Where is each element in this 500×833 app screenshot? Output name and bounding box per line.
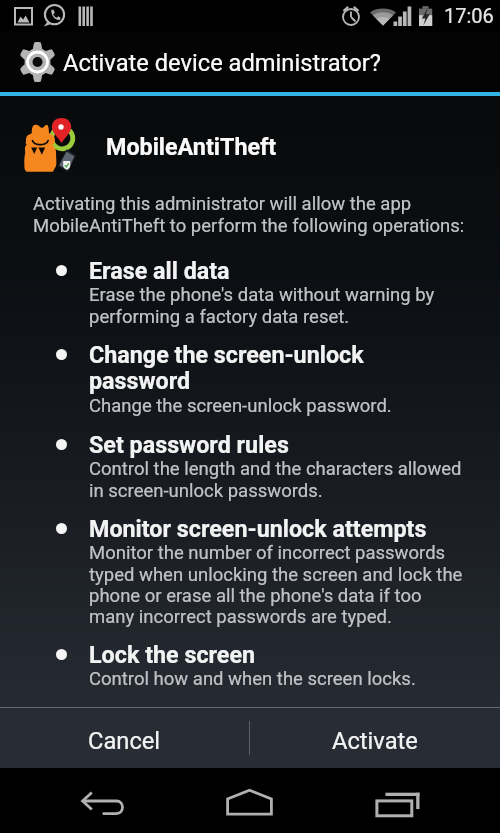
- staticText: Control the length and the characters al…: [89, 458, 465, 501]
- staticText: Monitor screen-unlock attempts: [89, 515, 427, 542]
- staticText: Activate device administrator?: [63, 49, 381, 77]
- staticText: Activate: [332, 727, 418, 755]
- staticText: Monitor the number of incorrect password…: [89, 542, 465, 627]
- staticText: Control how and when the screen locks.: [89, 668, 416, 690]
- staticText: 17:06: [444, 4, 494, 27]
- button[interactable]: Activate: [250, 708, 500, 768]
- button[interactable]: Home: [166, 768, 333, 833]
- staticText: MobileAntiTheft: [106, 133, 277, 160]
- staticText: Cancel: [88, 727, 161, 755]
- staticText: Erase the phone's data without warning b…: [89, 284, 465, 327]
- staticText: Erase all data: [89, 257, 230, 284]
- staticText: Set password rules: [89, 431, 289, 458]
- staticText: Activating this administrator will allow…: [33, 193, 466, 236]
- button[interactable]: Recent apps: [333, 768, 500, 833]
- staticText: Change the screen-unlock password: [89, 341, 465, 395]
- staticText: Lock the screen: [89, 641, 256, 668]
- button[interactable]: Back: [0, 768, 166, 833]
- button[interactable]: Cancel: [0, 708, 249, 768]
- staticText: Change the screen-unlock password.: [89, 395, 392, 417]
